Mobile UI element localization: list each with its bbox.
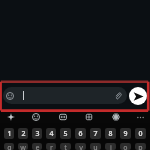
button[interactable]: Gallery — [110, 111, 122, 123]
button[interactable]: Emoji — [30, 111, 42, 123]
button[interactable]: 3 — [32, 128, 42, 139]
button[interactable]: r — [46, 143, 56, 150]
staticText: r — [50, 143, 53, 150]
button[interactable]: 4 — [46, 128, 56, 139]
staticText: 7 — [93, 129, 98, 139]
button[interactable]: GIF — [57, 111, 69, 123]
staticText: 5 — [63, 129, 68, 139]
staticText: 9 — [123, 129, 128, 139]
button[interactable]: o — [120, 143, 131, 150]
button[interactable]: 5 — [60, 128, 71, 139]
button[interactable]: 2 — [18, 128, 28, 139]
button[interactable]: q — [4, 143, 14, 150]
button[interactable]: i — [105, 143, 116, 150]
button[interactable]: w — [18, 143, 28, 150]
button[interactable]: Camera — [83, 111, 95, 123]
button[interactable]: y — [75, 143, 86, 150]
button[interactable]: More options — [134, 111, 146, 123]
staticText: 4 — [49, 129, 54, 139]
button[interactable] — [3, 87, 127, 104]
staticText: 2 — [21, 129, 26, 139]
button[interactable]: 0 — [135, 128, 146, 139]
button[interactable]: u — [90, 143, 101, 150]
staticText: p — [138, 143, 143, 150]
button[interactable]: Stickers — [5, 111, 17, 123]
button[interactable]: 1 — [4, 128, 14, 139]
staticText: 1 — [7, 129, 12, 139]
button[interactable]: 8 — [105, 128, 116, 139]
staticText: o — [123, 143, 128, 150]
button[interactable]: e — [32, 143, 42, 150]
button[interactable]: p — [135, 143, 146, 150]
staticText: w — [20, 143, 26, 150]
staticText: u — [93, 143, 98, 150]
button[interactable]: t — [60, 143, 71, 150]
staticText: i — [110, 143, 112, 150]
button[interactable]: 6 — [75, 128, 86, 139]
staticText: 8 — [108, 129, 113, 139]
staticText: t — [64, 143, 67, 150]
staticText: 3 — [35, 129, 40, 139]
staticText: q — [7, 143, 12, 150]
staticText: 6 — [78, 129, 83, 139]
button[interactable]: Send — [129, 87, 147, 105]
staticText: 0 — [138, 129, 143, 139]
button[interactable]: 9 — [120, 128, 131, 139]
button[interactable]: 7 — [90, 128, 101, 139]
staticText: e — [35, 143, 40, 150]
staticText: y — [79, 143, 83, 150]
